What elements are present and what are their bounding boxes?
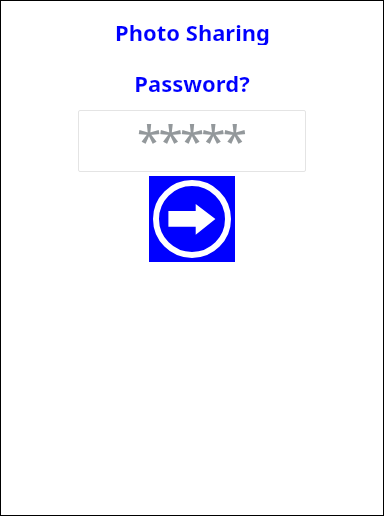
staticText: Photo Sharing (115, 17, 270, 45)
staticText: Password? (134, 68, 250, 96)
button[interactable]: Password (78, 110, 306, 172)
staticText: ***** (137, 110, 245, 170)
button[interactable]: Submit password (149, 176, 235, 262)
